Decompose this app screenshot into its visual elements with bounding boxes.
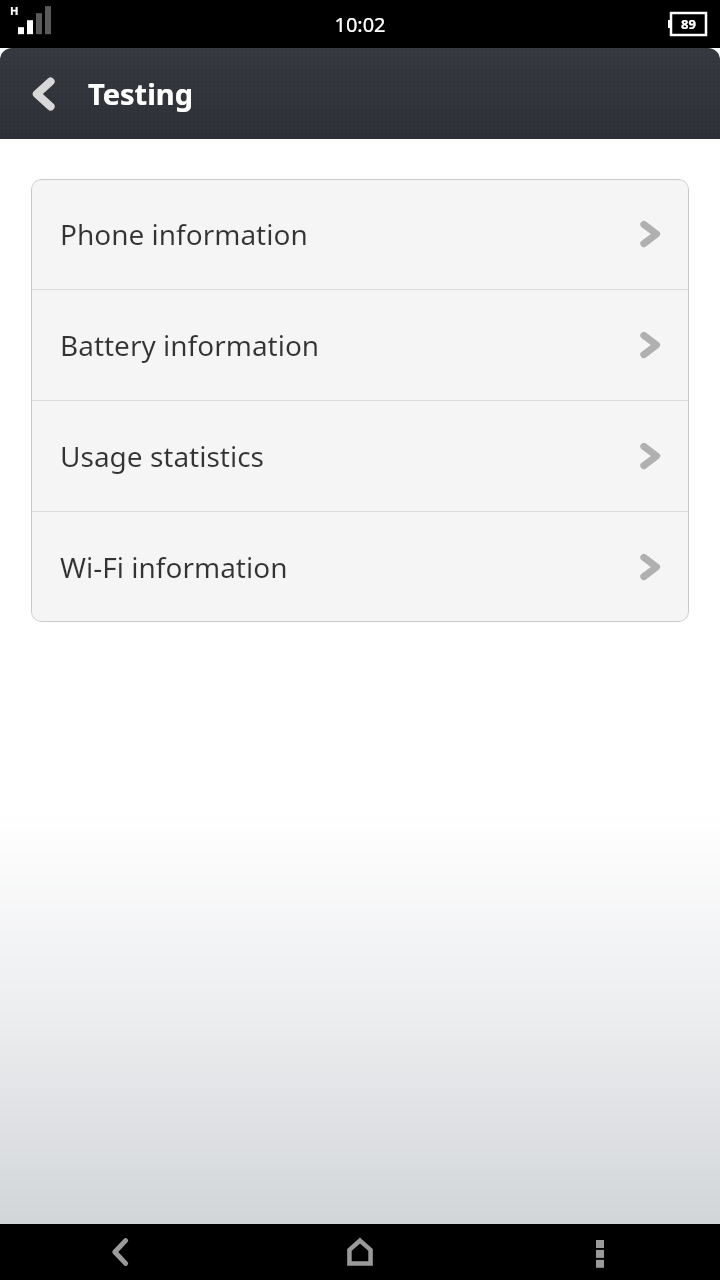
button[interactable]: Home: [240, 1224, 480, 1280]
staticText: Usage statistics: [60, 437, 639, 475]
staticText: 10:02: [334, 11, 386, 38]
button[interactable]: Phone information: [31, 179, 689, 289]
button[interactable]: Back: [0, 1224, 240, 1280]
button[interactable]: Battery information: [31, 290, 689, 400]
staticText: 89: [681, 15, 696, 33]
button[interactable]: Usage statistics: [31, 401, 689, 511]
button[interactable]: Back: [0, 48, 88, 139]
staticText: Battery information: [60, 326, 639, 364]
staticText: Testing: [88, 74, 194, 113]
staticText: Wi-Fi information: [60, 548, 639, 586]
button[interactable]: More options: [480, 1224, 720, 1280]
staticText: Phone information: [60, 215, 639, 253]
button[interactable]: Wi-Fi information: [31, 512, 689, 622]
staticText: H: [10, 3, 19, 18]
